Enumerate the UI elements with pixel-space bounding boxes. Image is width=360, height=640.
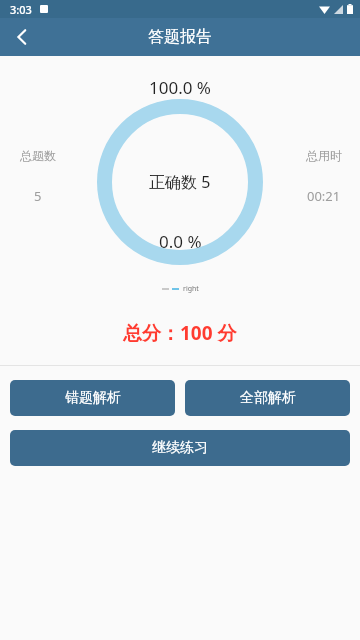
staticText: 5 [34, 187, 42, 205]
button[interactable]: Back [0, 18, 44, 56]
staticText: 00:21 [307, 187, 341, 205]
staticText: 总用时 [306, 148, 342, 163]
staticText: 错题解析 [65, 389, 121, 407]
staticText: right [183, 284, 199, 294]
staticText: 3:03 [10, 2, 32, 17]
button[interactable]: 继续练习 [10, 430, 350, 466]
staticText: 答题报告 [148, 27, 212, 47]
staticText: 全部解析 [240, 389, 296, 407]
staticText: 0.0 % [159, 230, 202, 253]
button[interactable]: 全部解析 [185, 380, 350, 416]
staticText: 继续练习 [152, 439, 208, 457]
staticText: 正确数 5 [149, 171, 211, 193]
staticText: 总分：100 分 [123, 320, 237, 346]
button[interactable]: 错题解析 [10, 380, 175, 416]
staticText: 总题数 [20, 148, 56, 163]
staticText: 100.0 % [149, 76, 211, 99]
